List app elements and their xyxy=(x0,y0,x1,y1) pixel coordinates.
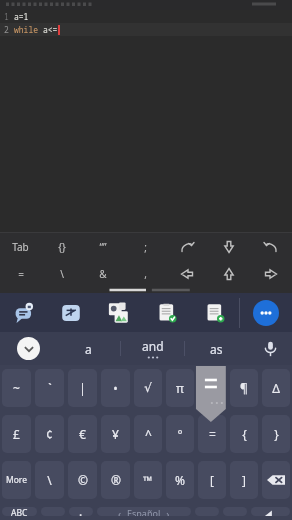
other: Undo xyxy=(177,237,197,257)
button[interactable]: ` xyxy=(35,369,64,407)
other: Move up xyxy=(219,237,239,257)
button[interactable]: More xyxy=(2,461,31,499)
button[interactable]: ^ xyxy=(134,415,162,453)
button[interactable]: Expand toolbar xyxy=(0,332,56,365)
button[interactable]: Saved clip xyxy=(150,296,184,330)
staticText: ` xyxy=(48,380,52,396)
button[interactable]: Clipboard history xyxy=(7,296,41,330)
other: Redo xyxy=(261,237,281,257)
button[interactable]: Enter xyxy=(251,507,290,516)
button[interactable]: Add clip xyxy=(198,296,232,330)
button[interactable]: as xyxy=(185,332,248,365)
button[interactable]: = xyxy=(0,260,41,287)
staticText: = xyxy=(18,267,24,281)
button[interactable]: Redo xyxy=(250,233,292,260)
other: Move down xyxy=(219,264,239,284)
staticText: · xyxy=(79,507,83,516)
staticText: % xyxy=(175,472,185,488)
button[interactable]: = xyxy=(198,415,226,453)
button[interactable]: Δ xyxy=(262,369,290,407)
staticText: ] xyxy=(242,472,246,488)
button[interactable]: Move left xyxy=(166,260,208,287)
staticText: a=1 xyxy=(14,11,29,22)
staticText: a<= xyxy=(43,24,58,35)
button[interactable]: Move down xyxy=(208,260,250,287)
button[interactable]: · xyxy=(69,507,93,516)
button[interactable]: Image search xyxy=(102,296,136,330)
button[interactable]: Undo xyxy=(166,233,208,260)
button[interactable]: ] xyxy=(230,461,258,499)
staticText: Español xyxy=(127,507,161,516)
button[interactable]: \ xyxy=(35,461,64,499)
button[interactable] xyxy=(198,369,226,407)
button[interactable]: ® xyxy=(101,461,130,499)
button[interactable]: Move right xyxy=(250,260,292,287)
staticText: } xyxy=(274,426,279,442)
button[interactable]: and xyxy=(121,332,184,365)
button[interactable]: More options xyxy=(240,293,292,332)
button[interactable]: Tab xyxy=(0,233,41,260)
staticText: \ xyxy=(47,472,52,488)
other: Move left xyxy=(177,264,197,284)
staticText: ¥ xyxy=(112,426,119,442)
staticText: ° xyxy=(177,426,183,442)
button[interactable]: & xyxy=(82,260,124,287)
button[interactable]: \ xyxy=(41,260,82,287)
button[interactable]: { xyxy=(230,415,258,453)
other: Move right xyxy=(261,264,281,284)
staticText: ® xyxy=(111,472,121,488)
staticText: © xyxy=(78,472,88,488)
button[interactable]: £ xyxy=(2,415,31,453)
button[interactable]: π xyxy=(166,369,194,407)
button[interactable]: | xyxy=(68,369,97,407)
staticText: 1 xyxy=(4,11,9,22)
staticText: ™ xyxy=(143,472,153,488)
staticText: and xyxy=(142,338,164,354)
other: Backspace xyxy=(266,470,286,490)
button[interactable]: , xyxy=(124,260,166,287)
staticText: | xyxy=(79,380,86,396)
button[interactable]: Voice input xyxy=(248,332,292,365)
staticText: ; xyxy=(144,240,147,254)
button[interactable]: ¥ xyxy=(101,415,130,453)
staticText: ~ xyxy=(13,380,20,396)
button[interactable]: ° xyxy=(166,415,194,453)
button[interactable]: Move up xyxy=(208,233,250,260)
button[interactable]: } xyxy=(262,415,290,453)
button[interactable]: “” xyxy=(82,233,124,260)
button[interactable]: a xyxy=(56,332,120,365)
button[interactable]: Backspace xyxy=(262,461,290,499)
button[interactable]: ~ xyxy=(2,369,31,407)
button[interactable]: ¢ xyxy=(35,415,64,453)
button[interactable]: Translate xyxy=(54,296,88,330)
button[interactable]: {} xyxy=(41,233,82,260)
button[interactable]: √ xyxy=(134,369,162,407)
staticText: € xyxy=(79,426,86,442)
staticText: {} xyxy=(58,240,66,254)
staticText: & xyxy=(99,267,107,281)
button[interactable]: ‹ xyxy=(97,507,191,516)
staticText: Tab xyxy=(12,240,29,254)
button[interactable]: [ xyxy=(198,461,226,499)
button[interactable]: ABC xyxy=(2,507,37,516)
button[interactable]: € xyxy=(68,415,97,453)
staticText: = xyxy=(209,426,216,442)
button[interactable]: % xyxy=(166,461,194,499)
staticText: 2 xyxy=(4,24,9,35)
button[interactable]: ¶ xyxy=(230,369,258,407)
button[interactable]: ; xyxy=(124,233,166,260)
button[interactable]: ™ xyxy=(134,461,162,499)
button[interactable]: © xyxy=(68,461,97,499)
staticText: More xyxy=(6,474,27,486)
button[interactable]: • xyxy=(101,369,130,407)
staticText: while xyxy=(14,24,43,35)
staticText: £ xyxy=(13,426,20,442)
staticText: “” xyxy=(99,240,107,254)
staticText: [ xyxy=(210,472,214,488)
staticText: √ xyxy=(144,381,152,395)
